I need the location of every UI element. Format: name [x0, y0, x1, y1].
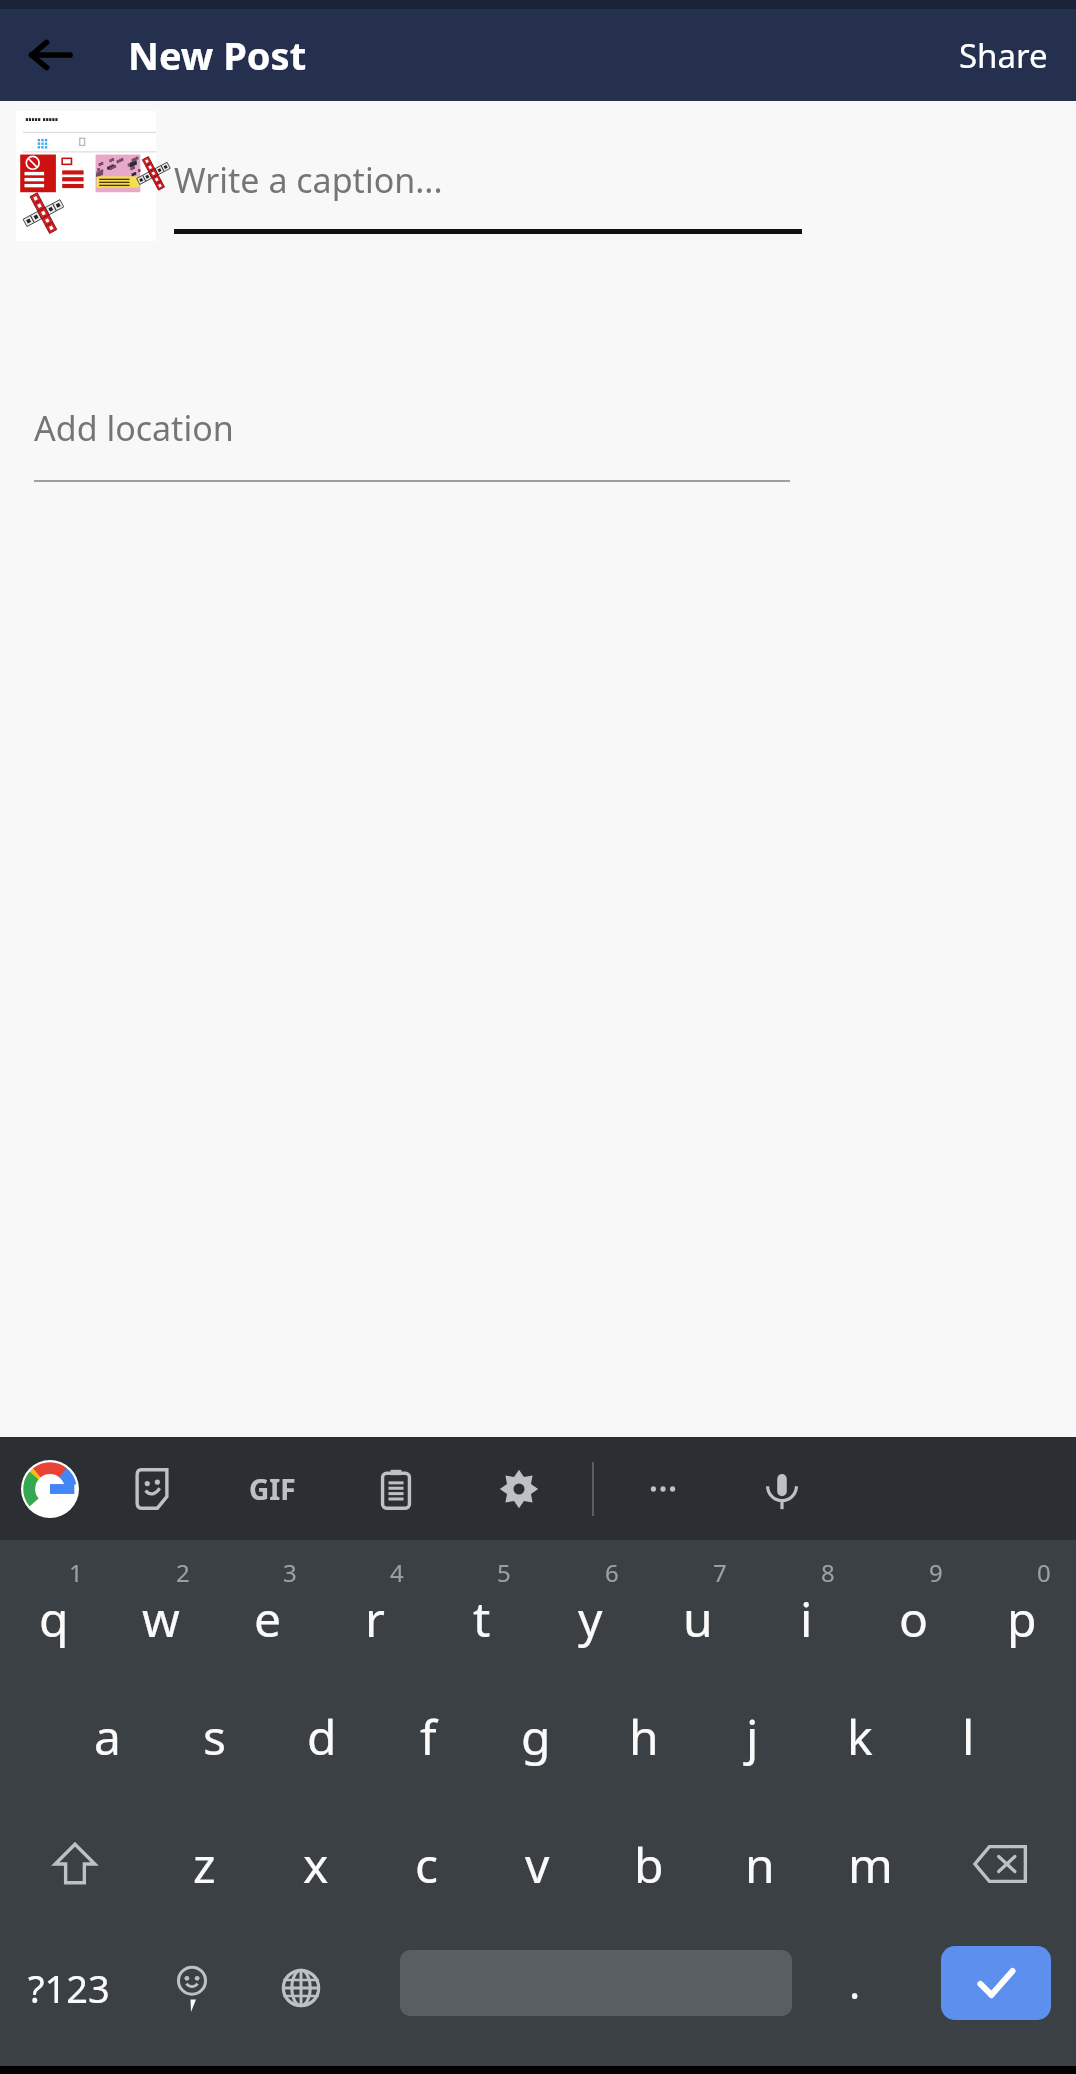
button[interactable]: 4 — [321, 1544, 428, 1672]
button[interactable]: 5 — [428, 1544, 536, 1672]
staticText: v — [525, 1832, 550, 1897]
staticText: d — [307, 1704, 337, 1769]
button[interactable]: a — [54, 1672, 161, 1800]
button[interactable]: h — [590, 1672, 698, 1800]
button[interactable]: j — [698, 1672, 806, 1800]
button[interactable]: d — [268, 1672, 375, 1800]
staticText: e — [254, 1586, 282, 1651]
staticText: a — [94, 1704, 121, 1769]
staticText: 9 — [929, 1556, 943, 1589]
staticText: Write a caption... — [174, 157, 443, 203]
staticText: k — [847, 1704, 873, 1769]
button[interactable]: 1 — [0, 1544, 107, 1672]
staticText: Share — [959, 33, 1048, 78]
staticText: 0 — [1037, 1556, 1051, 1589]
button[interactable]: 8 — [752, 1544, 860, 1672]
staticText: b — [634, 1832, 664, 1897]
button[interactable]: 9 — [860, 1544, 968, 1672]
button[interactable]: GIF — [236, 1453, 308, 1525]
staticText: 8 — [821, 1556, 835, 1589]
button[interactable]: m — [815, 1800, 926, 1928]
staticText: i — [800, 1586, 813, 1651]
staticText: New Post — [128, 29, 307, 81]
staticText: f — [420, 1704, 437, 1769]
staticText: c — [415, 1832, 439, 1897]
staticText: GIF — [249, 1470, 296, 1508]
button[interactable]: Change language — [246, 1928, 356, 2048]
staticText: 1 — [69, 1556, 83, 1589]
staticText: u — [683, 1586, 713, 1651]
button[interactable]: ?123 — [0, 1928, 138, 2048]
staticText: w — [142, 1586, 180, 1651]
button[interactable]: 2 — [107, 1544, 214, 1672]
button[interactable]: f — [375, 1672, 482, 1800]
staticText: g — [521, 1704, 551, 1769]
staticText: p — [1007, 1586, 1037, 1651]
button[interactable] — [174, 131, 802, 237]
button[interactable]: x — [260, 1800, 371, 1928]
button[interactable]: Stickers — [116, 1453, 188, 1525]
staticText: l — [962, 1704, 975, 1769]
staticText: t — [473, 1586, 491, 1651]
staticText: Add location — [34, 405, 234, 451]
staticText: n — [745, 1832, 775, 1897]
staticText: m — [848, 1832, 893, 1897]
button[interactable]: 3 — [214, 1544, 321, 1672]
button[interactable]: More options — [627, 1453, 699, 1525]
staticText: 3 — [283, 1556, 297, 1589]
button[interactable]: Settings — [483, 1453, 555, 1525]
staticText: 4 — [390, 1556, 404, 1589]
button[interactable]: Backspace — [926, 1800, 1076, 1928]
button[interactable]: Emoji — [138, 1928, 246, 2048]
button[interactable]: . — [800, 1928, 910, 2048]
button[interactable]: v — [482, 1800, 593, 1928]
button[interactable]: b — [593, 1800, 704, 1928]
staticText: o — [899, 1586, 929, 1651]
button[interactable]: 6 — [536, 1544, 644, 1672]
staticText: . — [849, 1954, 861, 2011]
staticText: z — [193, 1832, 216, 1897]
button[interactable]: Clipboard — [360, 1453, 432, 1525]
button[interactable]: Google — [14, 1453, 86, 1525]
button[interactable]: g — [482, 1672, 590, 1800]
button[interactable]: 7 — [644, 1544, 752, 1672]
staticText: q — [39, 1586, 69, 1651]
staticText: s — [203, 1704, 226, 1769]
button[interactable]: c — [371, 1800, 482, 1928]
button[interactable]: z — [149, 1800, 260, 1928]
staticText: r — [365, 1586, 385, 1651]
button[interactable]: Voice input — [746, 1453, 818, 1525]
button[interactable]: k — [806, 1672, 914, 1800]
staticText: ?123 — [28, 1962, 110, 2014]
staticText: j — [746, 1704, 759, 1769]
staticText: 5 — [497, 1556, 511, 1589]
button[interactable]: Selected image — [16, 111, 156, 241]
staticText: 7 — [713, 1556, 727, 1589]
button[interactable]: Enter — [941, 1946, 1051, 2020]
button[interactable]: Add location — [34, 397, 790, 481]
staticText: 2 — [176, 1556, 190, 1589]
button[interactable]: n — [704, 1800, 815, 1928]
staticText: h — [629, 1704, 659, 1769]
button[interactable]: Share — [931, 15, 1076, 96]
button[interactable]: s — [161, 1672, 268, 1800]
staticText: 6 — [605, 1556, 619, 1589]
button[interactable]: 0 — [968, 1544, 1076, 1672]
button[interactable]: l — [914, 1672, 1022, 1800]
staticText: y — [578, 1586, 603, 1651]
button[interactable]: Shift — [0, 1800, 149, 1928]
button[interactable]: Back — [10, 15, 90, 95]
staticText: x — [303, 1832, 329, 1897]
